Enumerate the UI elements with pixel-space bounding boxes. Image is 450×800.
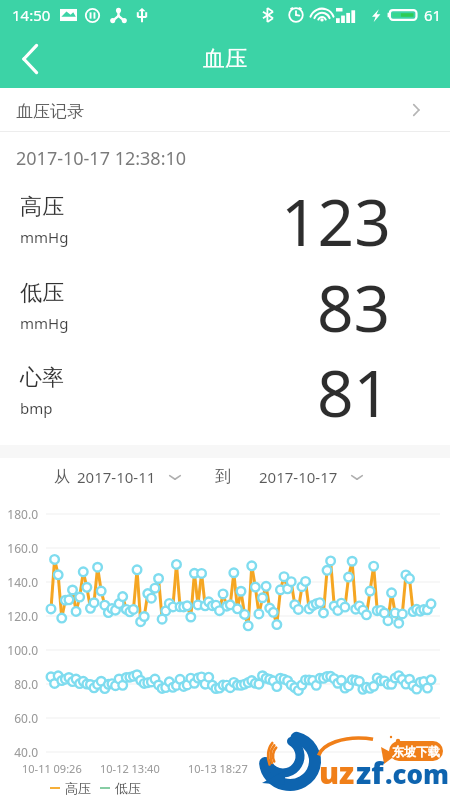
staticText: 2017-10-11 xyxy=(77,467,156,487)
staticText: 血压记录 xyxy=(16,101,84,122)
staticText: mmHg xyxy=(20,313,69,333)
staticText: 10-11 09:26 xyxy=(22,761,82,776)
staticText: 40.0 xyxy=(14,744,38,760)
button[interactable]: 到 xyxy=(215,467,364,487)
staticText: 到 xyxy=(215,467,231,487)
staticText: mmHg xyxy=(20,227,69,247)
staticText: 100.0 xyxy=(7,642,38,658)
staticText: 180.0 xyxy=(7,506,38,522)
staticText: zf xyxy=(356,752,384,793)
staticText: 2017-10-17 xyxy=(259,467,338,487)
staticText: 14:50 xyxy=(12,5,51,25)
staticText: 心率 xyxy=(20,364,64,392)
staticText: 160.0 xyxy=(7,540,38,556)
staticText: 血压 xyxy=(203,45,247,73)
staticText: 80.0 xyxy=(14,676,38,692)
staticText: 高压 xyxy=(20,193,64,221)
button[interactable]: Back xyxy=(0,33,52,85)
staticText: 低压 xyxy=(115,780,141,796)
staticText: 140.0 xyxy=(7,574,38,590)
staticText: 从 xyxy=(54,467,70,487)
staticText: 61 xyxy=(424,5,442,25)
staticText: 123 xyxy=(281,178,391,265)
staticText: 10-12 13:40 xyxy=(100,761,160,776)
staticText: 120.0 xyxy=(7,608,38,624)
staticText: 81 xyxy=(317,349,391,436)
staticText: 83 xyxy=(317,264,391,351)
staticText: .com xyxy=(385,756,450,791)
staticText: 高压 xyxy=(65,780,91,796)
button[interactable]: 血压记录 xyxy=(0,88,450,132)
staticText: 10-13 18:27 xyxy=(188,761,248,776)
staticText: 低压 xyxy=(20,279,64,307)
staticText: 60.0 xyxy=(14,710,38,726)
staticText: uz xyxy=(319,752,355,793)
staticText: 2017-10-17 12:38:10 xyxy=(16,146,187,171)
button[interactable]: 从 xyxy=(54,467,182,487)
staticText: 东坡下载 xyxy=(392,744,440,759)
staticText: bmp xyxy=(20,398,53,418)
